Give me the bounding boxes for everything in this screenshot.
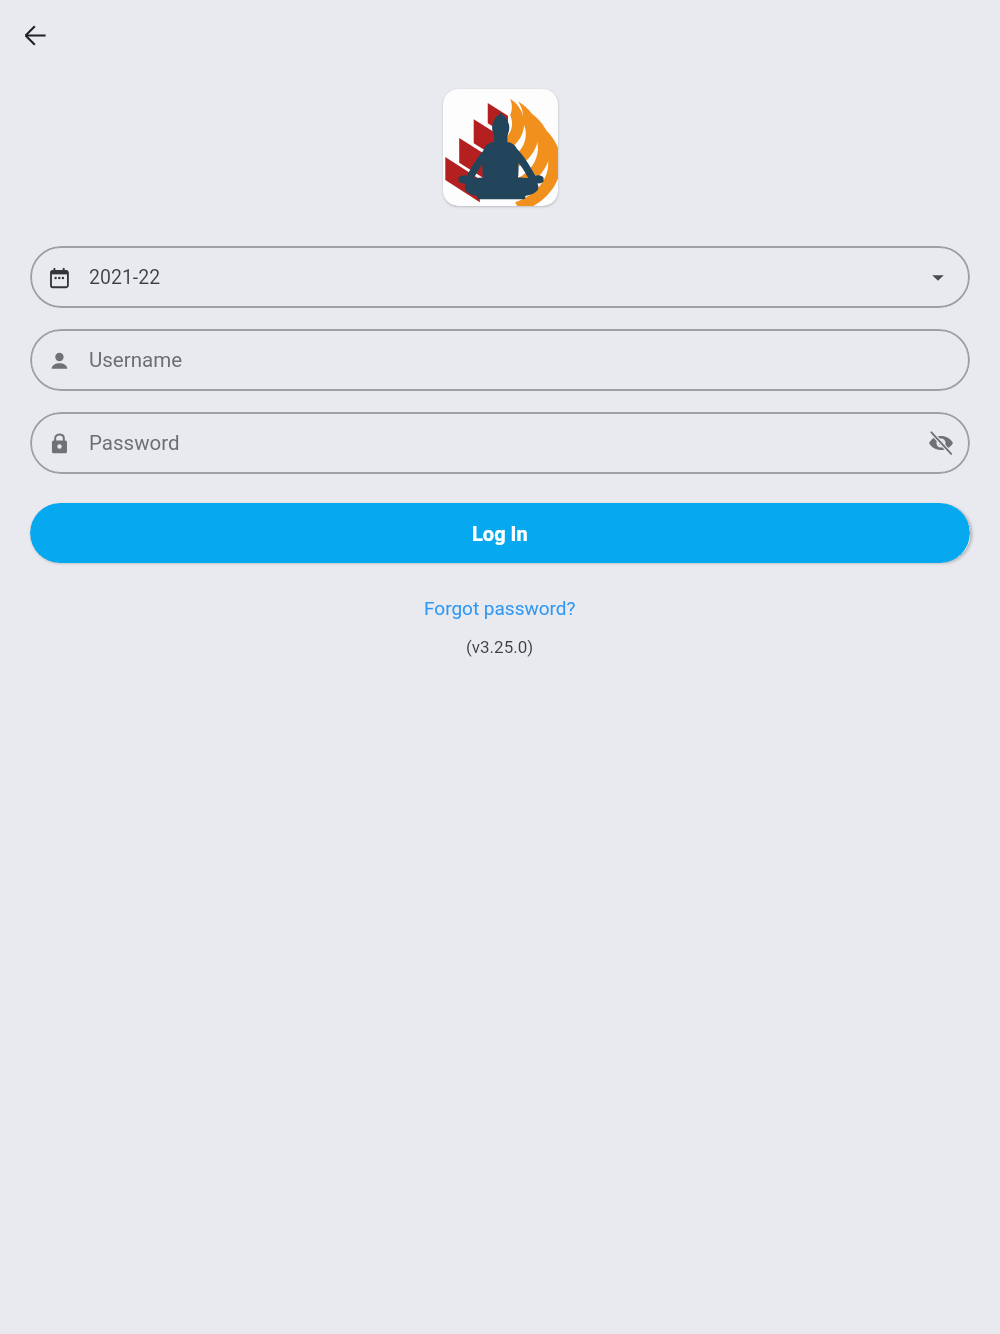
button[interactable]: Back [14, 14, 57, 57]
staticText: (v3.25.0) [466, 637, 534, 657]
button[interactable]: 2021-22 [30, 246, 970, 308]
button[interactable]: Username [30, 329, 970, 391]
button[interactable]: Show password [921, 423, 961, 463]
staticText: 2021-22 [89, 266, 161, 289]
staticText: Password [89, 431, 180, 455]
staticText: Forgot password? [424, 597, 576, 619]
button[interactable]: Log In [30, 503, 970, 563]
button[interactable]: Forgot password? [418, 595, 582, 621]
staticText: Log In [472, 522, 528, 545]
button[interactable]: Password [30, 412, 970, 474]
staticText: Username [89, 348, 183, 372]
